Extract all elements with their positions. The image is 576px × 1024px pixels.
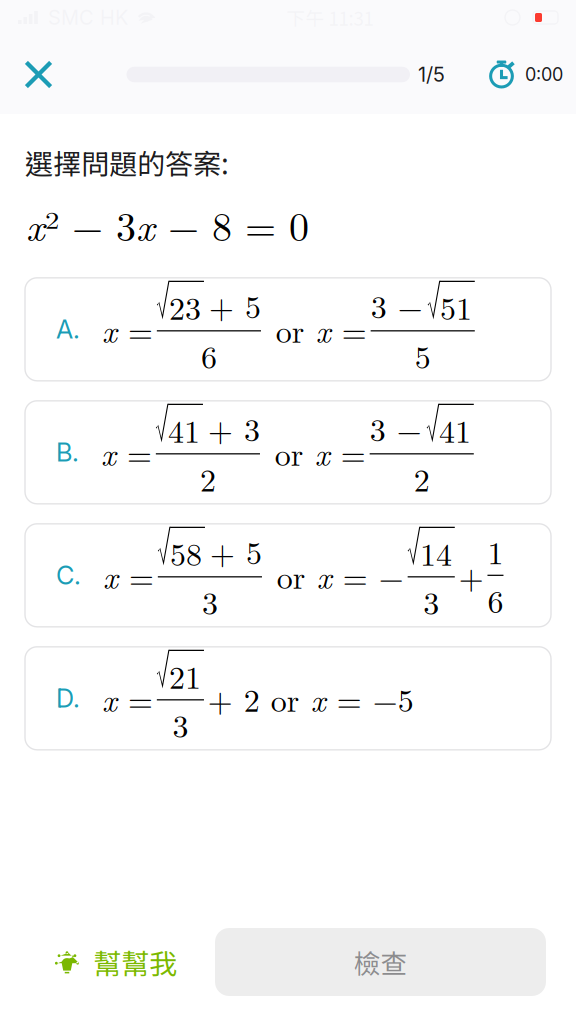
staticText: x = <box>315 430 366 474</box>
staticText: 3 − <box>370 405 422 451</box>
staticText: x = <box>316 307 367 351</box>
button[interactable]: Timer <box>487 48 563 100</box>
staticText: 0:00 <box>525 64 563 85</box>
button[interactable]: D. <box>25 647 551 750</box>
staticText: 幫幫我 <box>93 942 177 982</box>
button[interactable]: C. <box>25 524 551 627</box>
staticText: A. <box>56 314 80 345</box>
staticText: 23 <box>169 284 201 329</box>
staticText: 14 <box>420 530 452 575</box>
staticText: or <box>266 553 317 598</box>
staticText: or <box>265 307 316 352</box>
staticText: x = <box>102 307 153 351</box>
staticText: + 5 <box>209 282 261 328</box>
staticText: + 3 <box>208 405 260 451</box>
staticText: 21 <box>169 653 201 698</box>
staticText: 選擇問題的答案: <box>25 142 229 182</box>
staticText: 3 − <box>371 282 423 328</box>
staticText: 2 <box>414 455 430 501</box>
staticText: D. <box>56 683 80 714</box>
staticText: 58 <box>170 530 202 575</box>
staticText: 6 <box>201 332 217 378</box>
staticText: 41 <box>439 407 471 452</box>
button[interactable]: 檢查 <box>215 928 546 996</box>
staticText: + <box>459 553 484 598</box>
staticText: 6 <box>487 577 503 622</box>
staticText: C. <box>56 560 81 591</box>
staticText: 5 <box>415 332 431 378</box>
staticText: x = − <box>317 553 404 597</box>
button[interactable]: A. <box>25 278 551 381</box>
staticText: 41 <box>168 407 200 452</box>
staticText: 51 <box>440 284 472 329</box>
staticText: x = <box>102 676 153 720</box>
staticText: + 5 <box>210 528 262 574</box>
staticText: + 2 or <box>208 676 311 721</box>
staticText: x = −5 <box>311 676 414 720</box>
staticText: 3 <box>202 578 218 624</box>
staticText: 1/5 <box>418 62 445 87</box>
button[interactable]: Close <box>12 48 64 100</box>
button[interactable]: 幫幫我 <box>46 936 183 988</box>
staticText: or <box>264 430 315 475</box>
staticText: 3 <box>172 701 188 747</box>
staticText: x = <box>101 430 152 474</box>
staticText: 1 <box>487 528 503 574</box>
staticText: 2 <box>200 455 216 501</box>
staticText: B. <box>56 437 79 468</box>
staticText: x² − 3x − 8 = 0 <box>26 196 309 252</box>
staticText: 3 <box>423 578 439 624</box>
staticText: 檢查 <box>353 943 407 981</box>
button[interactable]: B. <box>25 401 551 504</box>
staticText: x = <box>103 553 154 597</box>
